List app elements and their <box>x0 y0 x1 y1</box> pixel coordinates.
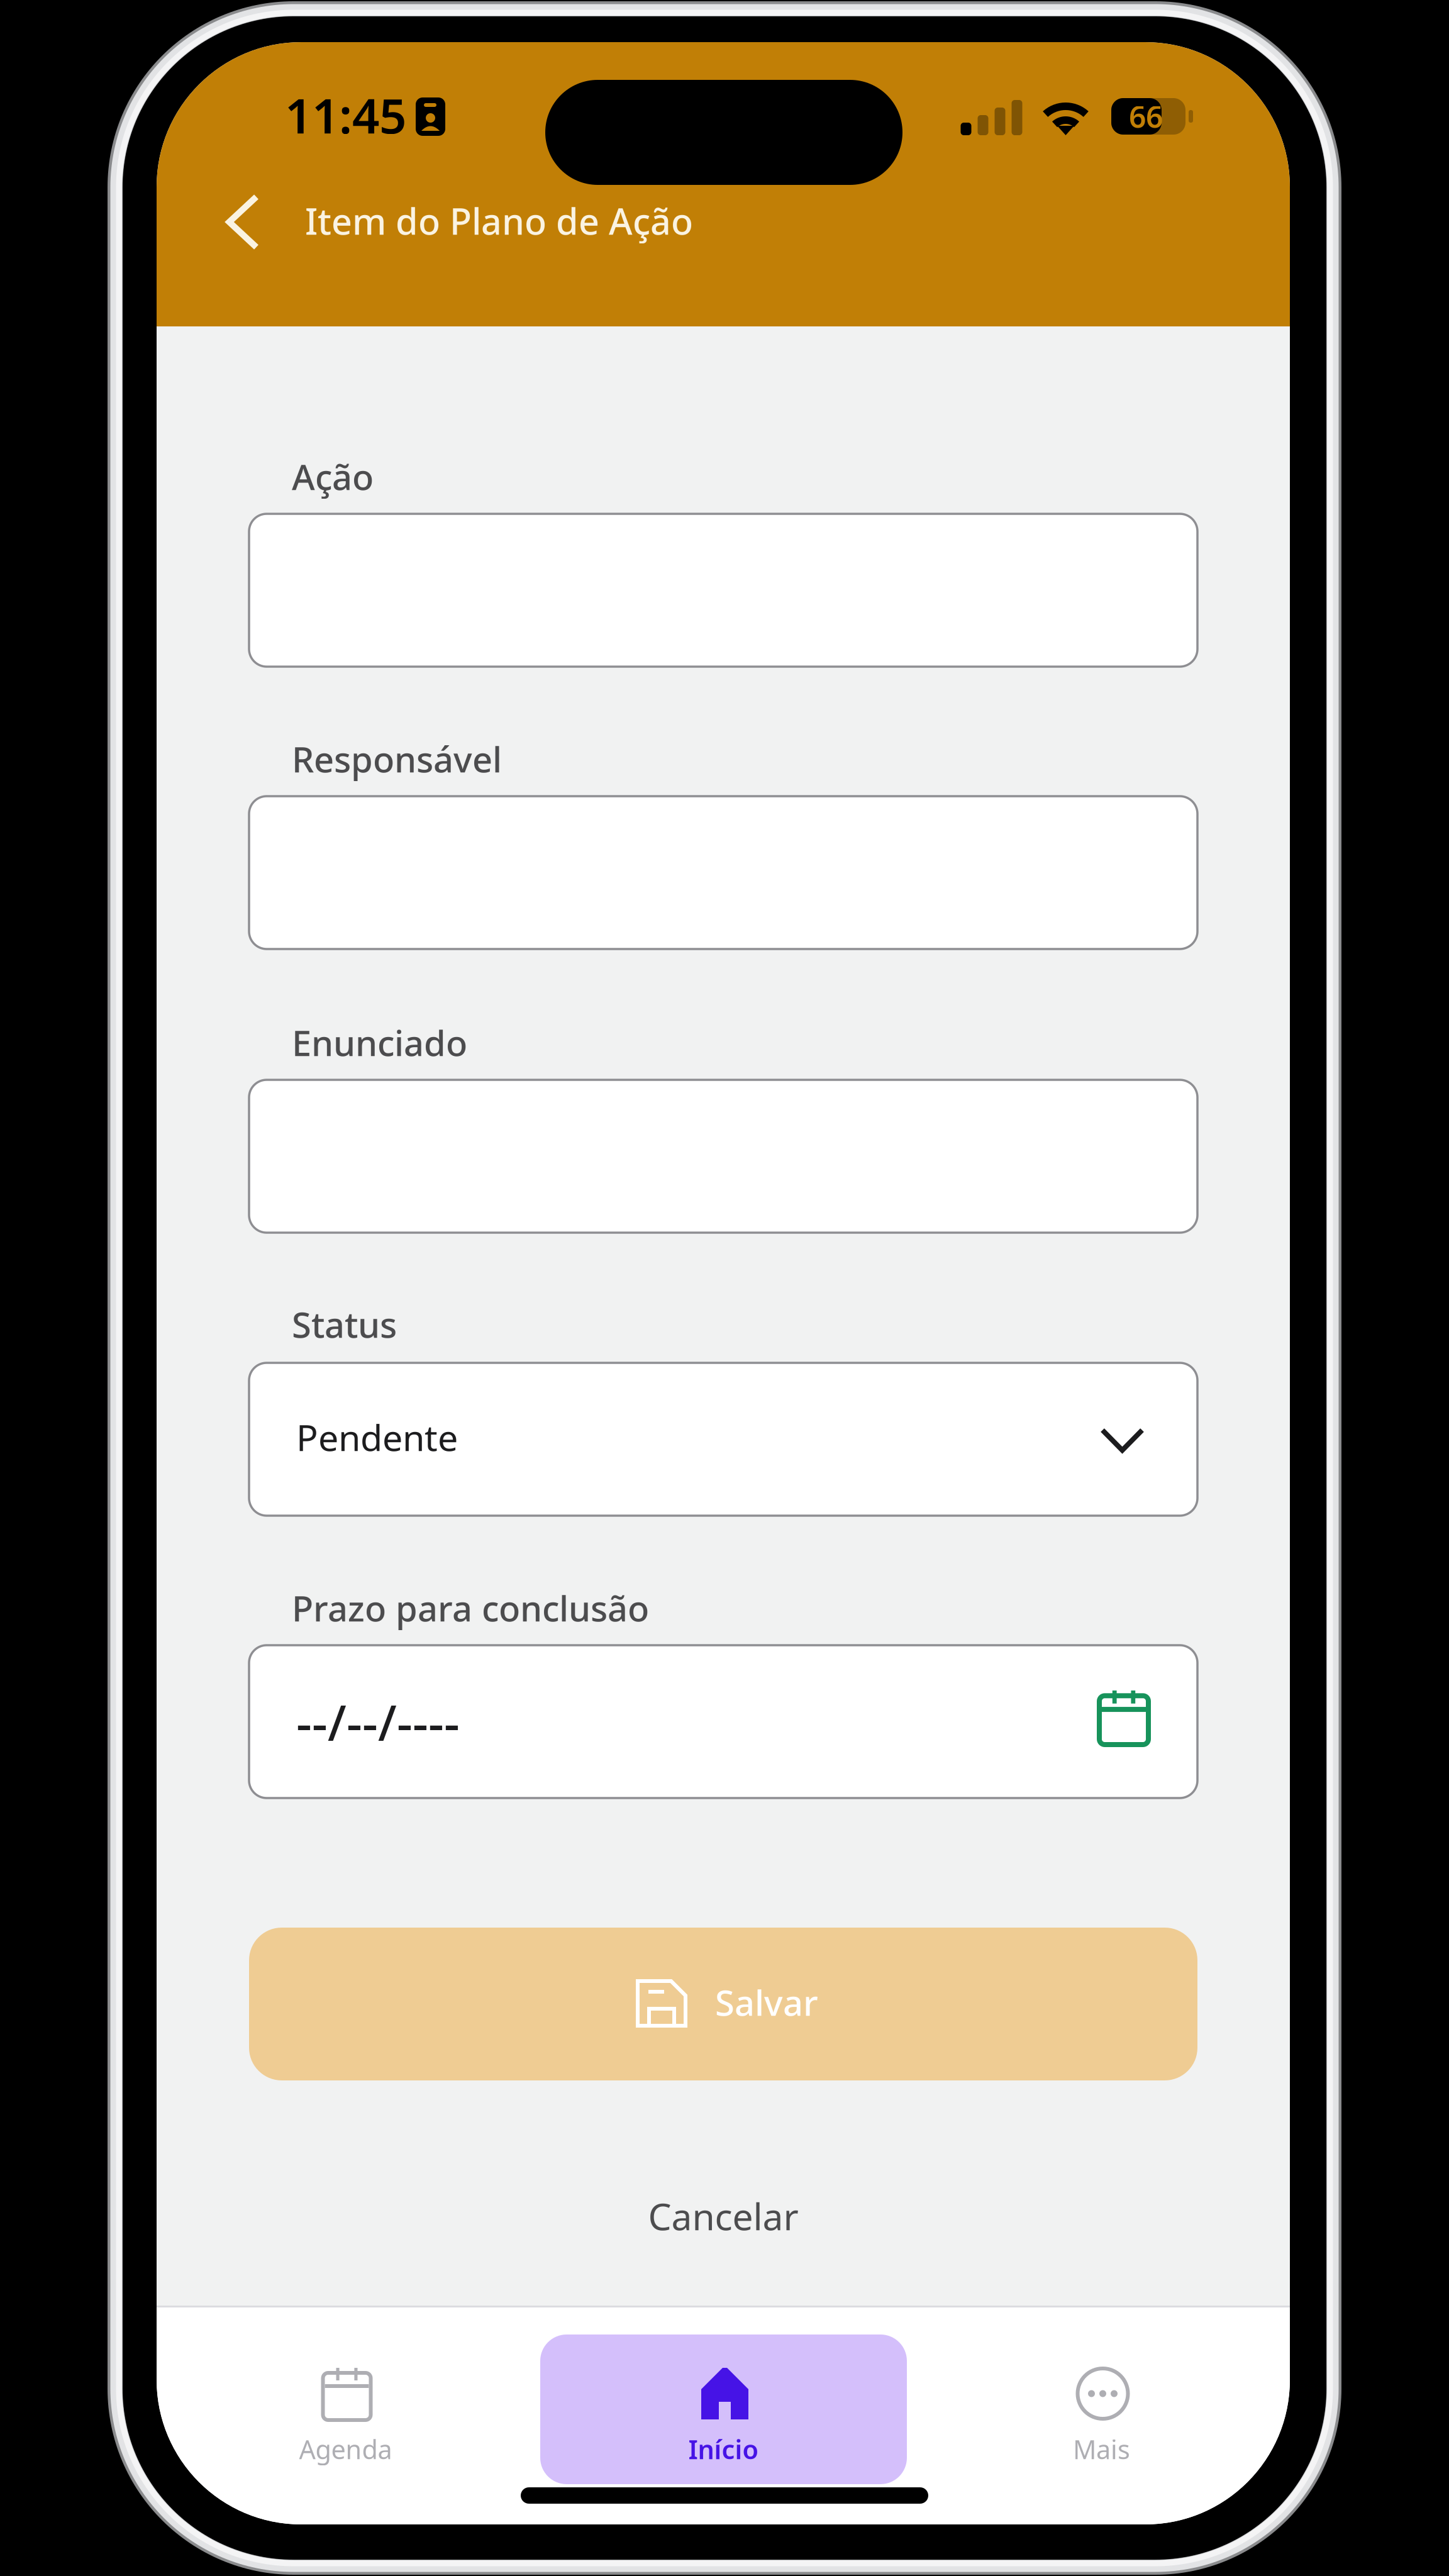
staticText: Mais <box>1073 2432 1130 2466</box>
staticText: Salvar <box>715 1979 818 2026</box>
staticText: 66 <box>1129 96 1163 136</box>
staticText: --/--/---- <box>296 1690 460 1754</box>
staticText: Item do Plano de Ação <box>305 197 693 245</box>
staticText: Início <box>688 2432 759 2466</box>
button[interactable]: --/--/---- <box>249 1645 1197 1798</box>
staticText: Enunciado <box>292 1019 467 1066</box>
staticText: 11:45 <box>285 83 406 147</box>
staticText: Prazo para conclusão <box>292 1584 649 1631</box>
staticText: Responsável <box>292 735 502 782</box>
button[interactable]: Mais <box>918 2334 1285 2484</box>
button[interactable]: Pendente <box>249 1363 1197 1516</box>
staticText: Status <box>292 1301 397 1348</box>
staticText: Ação <box>292 453 374 500</box>
staticText: Pendente <box>296 1413 458 1461</box>
button[interactable]: Agenda <box>162 2334 529 2484</box>
staticText: Agenda <box>299 2432 392 2466</box>
button[interactable]: Início <box>540 2334 907 2484</box>
button[interactable]: Salvar <box>249 1928 1197 2080</box>
button[interactable]: Cancelar <box>157 42 471 97</box>
staticText: Cancelar <box>648 2191 798 2240</box>
button[interactable]: Voltar <box>157 42 238 124</box>
